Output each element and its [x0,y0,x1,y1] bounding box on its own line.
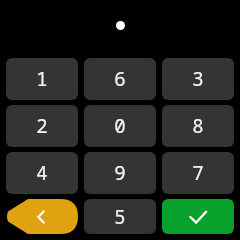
button[interactable]: Delete [6,199,78,234]
staticText: 6 [114,66,126,92]
staticText: 9 [114,160,126,186]
button[interactable]: 5 [84,199,156,234]
button[interactable]: 1 [6,58,78,100]
button[interactable]: Confirm [162,199,234,234]
staticText: 8 [192,113,204,139]
staticText: 3 [192,66,204,92]
button[interactable]: 2 [6,105,78,147]
staticText: 0 [114,113,126,139]
button[interactable]: 9 [84,152,156,194]
staticText: 1 [36,66,48,92]
button[interactable]: 3 [162,58,234,100]
staticText: 2 [36,113,48,139]
button[interactable]: 6 [84,58,156,100]
staticText: 4 [36,160,48,186]
staticText: 7 [192,160,204,186]
button[interactable]: 8 [162,105,234,147]
button[interactable]: 7 [162,152,234,194]
button[interactable]: 4 [6,152,78,194]
button[interactable]: 0 [84,105,156,147]
staticText: 5 [114,204,126,230]
